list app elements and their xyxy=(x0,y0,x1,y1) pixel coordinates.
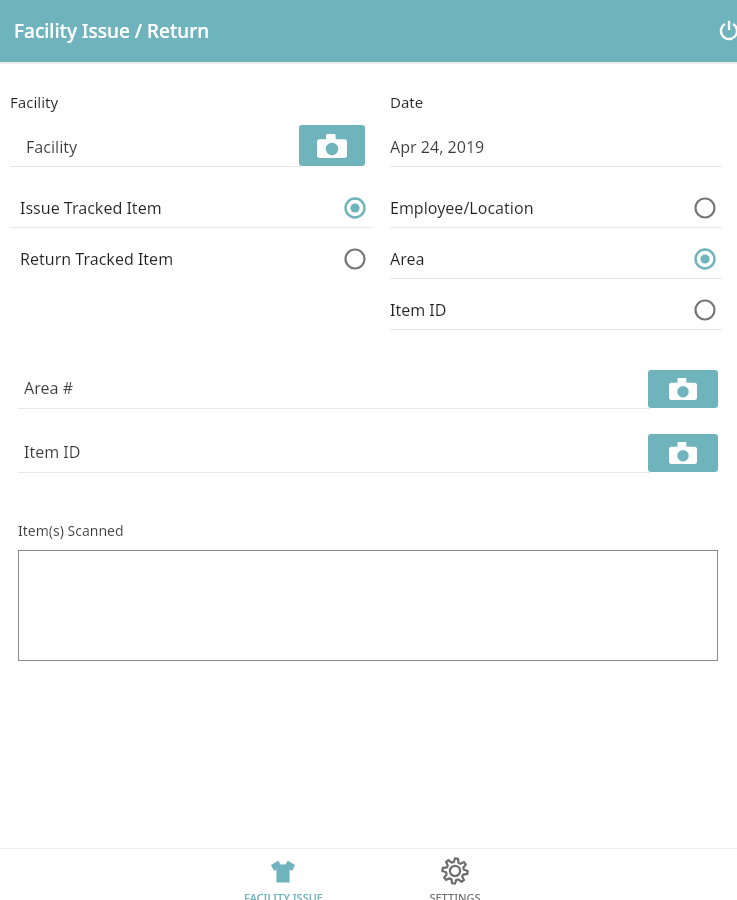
staticText: Facility xyxy=(10,92,59,112)
staticText: Issue Tracked Item xyxy=(20,197,338,219)
button[interactable]: SETTINGS xyxy=(390,856,520,900)
staticText: Apr 24, 2019 xyxy=(390,136,485,158)
staticText: Item ID xyxy=(390,299,688,321)
button[interactable]: Area # xyxy=(18,368,648,408)
button[interactable] xyxy=(18,550,718,661)
button[interactable]: Power / Log out xyxy=(707,9,737,53)
button[interactable]: FACILITY ISSUE xyxy=(218,856,348,900)
staticText: FACILITY ISSUE xyxy=(244,890,323,900)
staticText: Item ID xyxy=(24,441,81,463)
staticText: Facility xyxy=(26,136,78,158)
button[interactable]: Scan item ID xyxy=(648,434,718,472)
button[interactable]: Scan facility xyxy=(299,125,365,166)
staticText: Item(s) Scanned xyxy=(18,521,124,540)
button[interactable]: Employee/Location xyxy=(390,189,722,227)
staticText: Area # xyxy=(24,377,74,399)
button[interactable]: Scan area number xyxy=(648,370,718,408)
staticText: Date xyxy=(390,92,424,112)
button[interactable]: Area xyxy=(390,240,722,278)
staticText: SETTINGS xyxy=(429,890,481,900)
button[interactable]: Item ID xyxy=(18,432,648,472)
button[interactable]: Item ID xyxy=(390,291,722,329)
staticText: Return Tracked Item xyxy=(20,248,338,270)
button[interactable]: Return Tracked Item xyxy=(10,240,372,278)
staticText: Area xyxy=(390,248,688,270)
staticText: Facility Issue / Return xyxy=(14,18,210,44)
button[interactable]: Issue Tracked Item xyxy=(10,189,372,227)
staticText: Employee/Location xyxy=(390,197,688,219)
